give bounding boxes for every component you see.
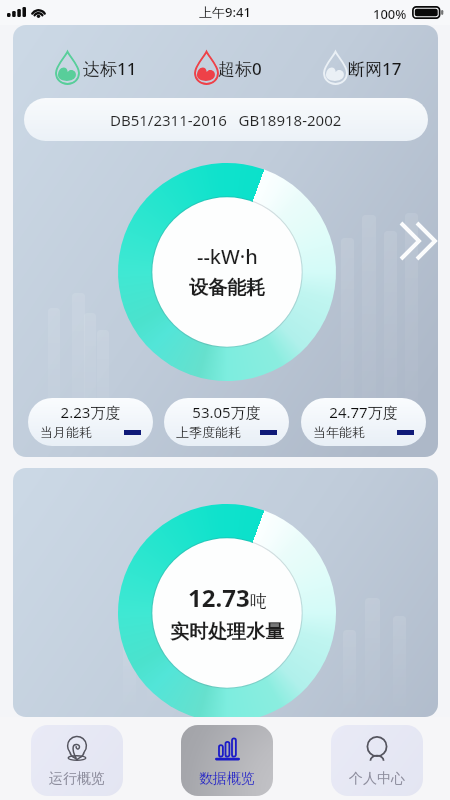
staticText: 当月能耗 xyxy=(40,424,92,440)
button[interactable]: 53.05万度 xyxy=(164,398,289,446)
staticText: 53.05万度 xyxy=(164,402,289,422)
button[interactable]: 数据概览 xyxy=(181,725,273,796)
staticText: DB51/2311-2016 GB18918-2002 xyxy=(110,110,342,130)
button[interactable]: 运行概览 xyxy=(31,725,123,796)
button[interactable]: 2.23万度 xyxy=(28,398,153,446)
staticText: 12.73 xyxy=(188,581,250,614)
staticText: 断网17 xyxy=(348,57,402,80)
staticText: 达标11 xyxy=(83,57,137,80)
staticText: 上午9:41 xyxy=(199,3,251,21)
staticText: 100% xyxy=(373,5,407,23)
staticText: 上季度能耗 xyxy=(176,424,241,440)
staticText: 吨 xyxy=(250,591,267,612)
staticText: 个人中心 xyxy=(349,770,405,788)
other: More xyxy=(399,219,433,263)
staticText: 设备能耗 xyxy=(189,276,265,300)
button[interactable]: 个人中心 xyxy=(331,725,423,796)
staticText: 24.77万度 xyxy=(301,402,426,422)
button[interactable]: DB51/2311-2016 GB18918-2002 xyxy=(24,98,428,141)
staticText: 数据概览 xyxy=(199,770,255,788)
staticText: 运行概览 xyxy=(49,770,105,788)
button[interactable]: 24.77万度 xyxy=(301,398,426,446)
staticText: 实时处理水量 xyxy=(170,620,284,644)
staticText: 2.23万度 xyxy=(28,402,153,422)
staticText: 当年能耗 xyxy=(313,424,365,440)
staticText: 超标0 xyxy=(218,57,262,80)
staticText: --kW·h xyxy=(197,243,258,270)
